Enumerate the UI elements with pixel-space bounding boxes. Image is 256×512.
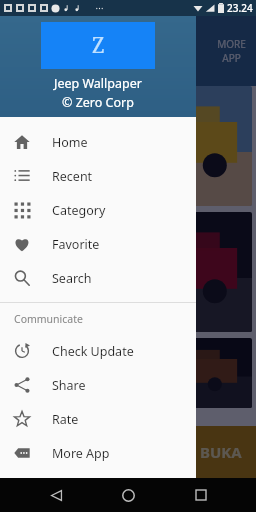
staticText: © Zero Corp <box>62 94 134 111</box>
button[interactable]: More App <box>0 436 196 470</box>
button[interactable]: Grand Cherokee <box>4 212 252 332</box>
staticText: Grand Cherokee <box>12 311 97 326</box>
button[interactable]: Home <box>0 125 196 159</box>
button[interactable]: Search <box>0 261 196 295</box>
staticText: BUKA <box>200 442 242 462</box>
staticText: Search <box>52 270 92 287</box>
button[interactable]: Home <box>111 478 145 512</box>
staticText: Home <box>52 134 88 151</box>
staticText: Favorite <box>52 236 100 253</box>
staticText: APP <box>222 51 241 65</box>
button[interactable]: Back <box>39 478 73 512</box>
staticText: Check Update <box>52 343 134 360</box>
staticText: Recent <box>52 168 93 185</box>
button[interactable]: Recent <box>0 159 196 193</box>
button[interactable]: Rate <box>0 402 196 436</box>
staticText: Compass <box>12 387 60 402</box>
staticText: Z <box>92 31 105 60</box>
staticText: Jeep Wallpaper <box>54 75 142 92</box>
button[interactable]: Favorite <box>0 227 196 261</box>
button[interactable]: BUKA <box>0 426 256 478</box>
button[interactable]: Wrangler Rubicon <box>4 86 252 206</box>
button[interactable]: Check Update <box>0 334 196 368</box>
staticText: MORE <box>217 37 246 51</box>
button[interactable]: Recent apps <box>184 478 218 512</box>
button[interactable]: Compass <box>4 338 252 408</box>
button[interactable]: Category <box>0 193 196 227</box>
button[interactable]: Share <box>0 368 196 402</box>
staticText: More App <box>52 445 110 462</box>
staticText: 23.24 <box>227 1 253 15</box>
staticText: Category <box>52 202 106 219</box>
staticText: Communicate <box>14 312 83 326</box>
staticText: Rate <box>52 411 79 428</box>
staticText: Share <box>52 377 86 394</box>
